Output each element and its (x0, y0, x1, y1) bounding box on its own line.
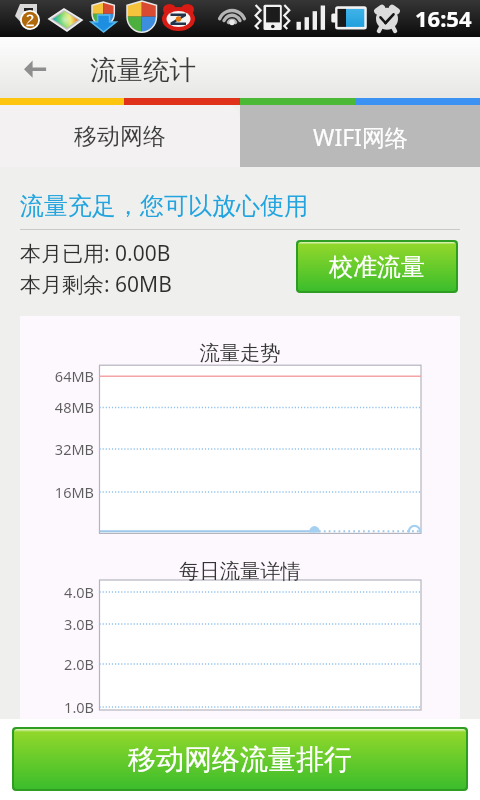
staticText: 流量充足，您可以放心使用 (20, 191, 308, 221)
button[interactable]: 移动网络流量排行 (12, 727, 468, 791)
staticText: WIFI网络 (313, 121, 408, 152)
staticText: 移动网络 (74, 122, 166, 151)
button[interactable]: 校准流量 (296, 240, 458, 293)
staticText: 本月剩余: 60MB (20, 270, 172, 299)
staticText: 16MB (20, 482, 94, 502)
staticText: 校准流量 (329, 252, 425, 282)
staticText: 16:54 (415, 3, 472, 33)
staticText: 2.0B (20, 654, 94, 674)
button[interactable]: WIFI网络 (240, 105, 480, 167)
staticText: 流量走势 (20, 340, 460, 366)
button[interactable]: 移动网络 (0, 105, 240, 167)
staticText: 3.0B (20, 614, 94, 634)
staticText: 流量统计 (90, 53, 196, 86)
staticText: 1.0B (20, 697, 94, 717)
button[interactable]: Back (0, 37, 72, 98)
staticText: 4.0B (20, 582, 94, 602)
staticText: 48MB (20, 397, 94, 417)
staticText: 每日流量详情 (20, 558, 460, 584)
staticText: 32MB (20, 439, 94, 459)
staticText: 本月已用: 0.00B (20, 239, 171, 268)
staticText: 移动网络流量排行 (128, 742, 352, 777)
staticText: 64MB (20, 366, 94, 386)
